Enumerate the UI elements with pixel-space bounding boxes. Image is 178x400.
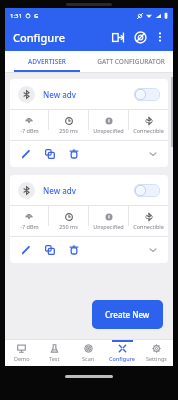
staticText: Scan: [82, 355, 95, 362]
button[interactable]: Unspecified: [89, 110, 128, 140]
staticText: GATT CONFIGURATOR: [97, 57, 165, 66]
button[interactable]: -7 dBm: [10, 110, 48, 140]
button[interactable]: 250 ms: [49, 110, 88, 140]
staticText: Test: [49, 355, 60, 362]
staticText: 250 ms: [59, 127, 78, 134]
button[interactable]: Create New: [92, 300, 163, 329]
button[interactable]: Scan: [71, 340, 105, 366]
button[interactable]: GATT CONFIGURATOR: [89, 51, 173, 72]
staticText: -7 dBm: [20, 127, 39, 134]
staticText: ADVERTISER: [28, 57, 66, 66]
button[interactable]: Connections: [107, 26, 129, 48]
button[interactable]: Edit: [16, 240, 36, 260]
staticText: Unspecified: [93, 127, 124, 134]
staticText: -7 dBm: [20, 223, 39, 230]
staticText: New adv: [43, 185, 76, 196]
staticText: New adv: [43, 89, 76, 100]
button[interactable]: Delete: [64, 144, 84, 164]
button[interactable]: More options: [151, 28, 169, 46]
button[interactable]: ADVERTISER: [5, 51, 89, 72]
staticText: Connectible: [133, 127, 164, 134]
button[interactable]: Enable advertiser: [134, 184, 160, 197]
button[interactable]: Enable advertiser: [134, 88, 160, 101]
staticText: Connectible: [133, 223, 164, 230]
staticText: Demo: [14, 355, 30, 362]
button[interactable]: -7 dBm: [10, 206, 48, 236]
button[interactable]: New adv: [10, 79, 168, 109]
button[interactable]: New adv: [10, 175, 168, 205]
staticText: 1:31: [10, 12, 22, 20]
staticText: 250 ms: [59, 223, 78, 230]
button[interactable]: Configure: [105, 340, 139, 366]
button[interactable]: Copy: [40, 240, 60, 260]
staticText: Settings: [146, 355, 167, 362]
staticText: Configure: [13, 30, 65, 45]
button[interactable]: Unspecified: [89, 206, 128, 236]
button[interactable]: Connectible: [129, 206, 168, 236]
button[interactable]: Settings: [139, 340, 173, 366]
button[interactable]: Connectible: [129, 110, 168, 140]
button[interactable]: Edit: [16, 144, 36, 164]
staticText: Configure: [109, 355, 135, 362]
staticText: Create New: [105, 309, 150, 320]
button[interactable]: Expand: [144, 241, 162, 259]
staticText: Unspecified: [93, 223, 124, 230]
button[interactable]: Demo: [5, 340, 38, 366]
button[interactable]: Copy: [40, 144, 60, 164]
button[interactable]: Expand: [144, 145, 162, 163]
button[interactable]: Test: [38, 340, 71, 366]
button[interactable]: 250 ms: [49, 206, 88, 236]
staticText: G: [34, 12, 39, 20]
button[interactable]: Disable notifications: [129, 26, 151, 48]
button[interactable]: Delete: [64, 240, 84, 260]
